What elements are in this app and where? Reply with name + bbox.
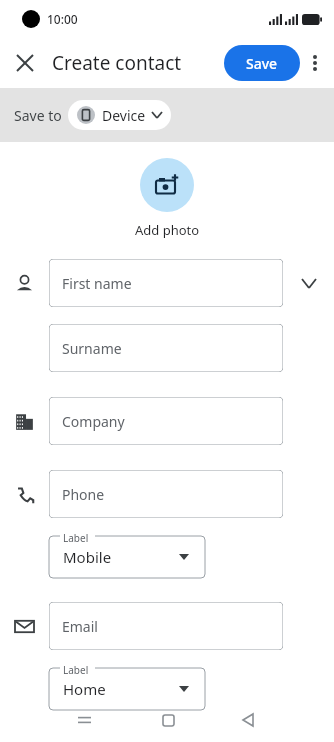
button[interactable]: Save <box>224 45 300 81</box>
staticText: Save <box>246 54 278 73</box>
staticText: First name <box>62 274 132 293</box>
staticText: Company <box>62 412 125 431</box>
staticText: Mobile <box>63 547 112 567</box>
button[interactable]: Surname <box>49 324 283 372</box>
button[interactable]: Back <box>232 704 264 736</box>
staticText: Home <box>63 679 106 699</box>
button[interactable]: Phone <box>49 470 283 518</box>
staticText: Surname <box>62 339 122 358</box>
button[interactable]: Label <box>49 530 205 578</box>
staticText: Label <box>63 531 89 545</box>
staticText: Device <box>102 106 146 125</box>
button[interactable]: More options <box>300 48 330 78</box>
button[interactable]: Device <box>68 100 171 130</box>
staticText: Add photo <box>135 221 200 239</box>
staticText: 10:00 <box>47 11 78 27</box>
button[interactable]: Recents <box>68 704 100 736</box>
button[interactable]: First name <box>49 259 283 307</box>
button[interactable]: Company <box>49 397 283 445</box>
button[interactable]: Close <box>8 46 42 80</box>
staticText: Email <box>62 617 98 636</box>
staticText: Create contact <box>52 50 182 76</box>
button[interactable]: Email <box>49 602 283 650</box>
button[interactable]: Home <box>152 704 184 736</box>
button[interactable]: Add photo <box>140 158 194 212</box>
button[interactable]: Label <box>49 662 205 710</box>
staticText: Save to <box>14 106 62 125</box>
button[interactable]: Expand name fields <box>294 268 324 298</box>
staticText: Phone <box>62 485 105 504</box>
staticText: Label <box>63 663 89 677</box>
